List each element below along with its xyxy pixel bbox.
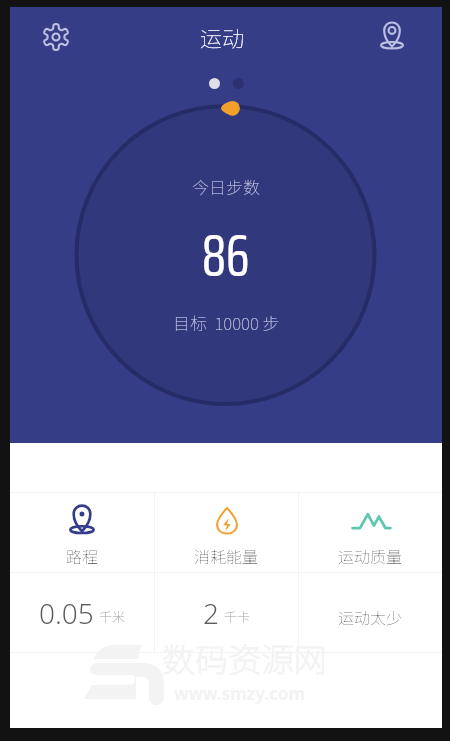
staticText: 数码资源网 [162, 634, 327, 682]
staticText: 运动 [200, 21, 245, 53]
staticText: 0.05 [39, 594, 94, 632]
button[interactable]: 0.05 [10, 573, 154, 652]
staticText: 运动太少 [338, 605, 403, 628]
staticText: www.smzy.com [174, 682, 306, 705]
button[interactable]: 路程 [10, 493, 154, 572]
button[interactable]: Settings [35, 16, 77, 58]
staticText: 运动质量 [338, 544, 403, 567]
staticText: 目标 10000 步 [173, 310, 280, 335]
staticText: 路程 [66, 544, 99, 567]
staticText: 千米 [99, 607, 126, 626]
button[interactable]: 消耗能量 [155, 493, 298, 572]
staticText: 86 [202, 208, 250, 302]
button[interactable]: 2 [155, 573, 298, 652]
button[interactable]: 运动质量 [299, 493, 442, 572]
staticText: 今日步数 [192, 174, 260, 199]
staticText: 消耗能量 [194, 544, 259, 567]
button[interactable]: 运动太少 [299, 573, 442, 652]
staticText: 千卡 [224, 607, 251, 626]
button[interactable]: Location [371, 16, 413, 58]
staticText: 2 [203, 594, 219, 632]
